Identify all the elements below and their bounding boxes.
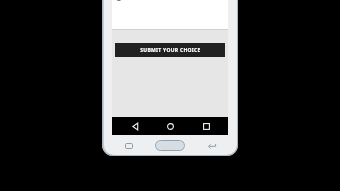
button[interactable]: SUBMIT YOUR CHOICE bbox=[115, 43, 225, 57]
button[interactable]: D. -1 bbox=[116, 0, 228, 3]
button[interactable]: Recent apps bbox=[116, 138, 142, 154]
button[interactable]: Back bbox=[199, 138, 225, 154]
button[interactable]: Back bbox=[122, 117, 148, 135]
staticText: SUBMIT YOUR CHOICE bbox=[140, 47, 201, 54]
button[interactable]: Home bbox=[157, 117, 183, 135]
button[interactable]: Home bbox=[155, 140, 185, 151]
button[interactable]: Recent apps bbox=[193, 117, 219, 135]
